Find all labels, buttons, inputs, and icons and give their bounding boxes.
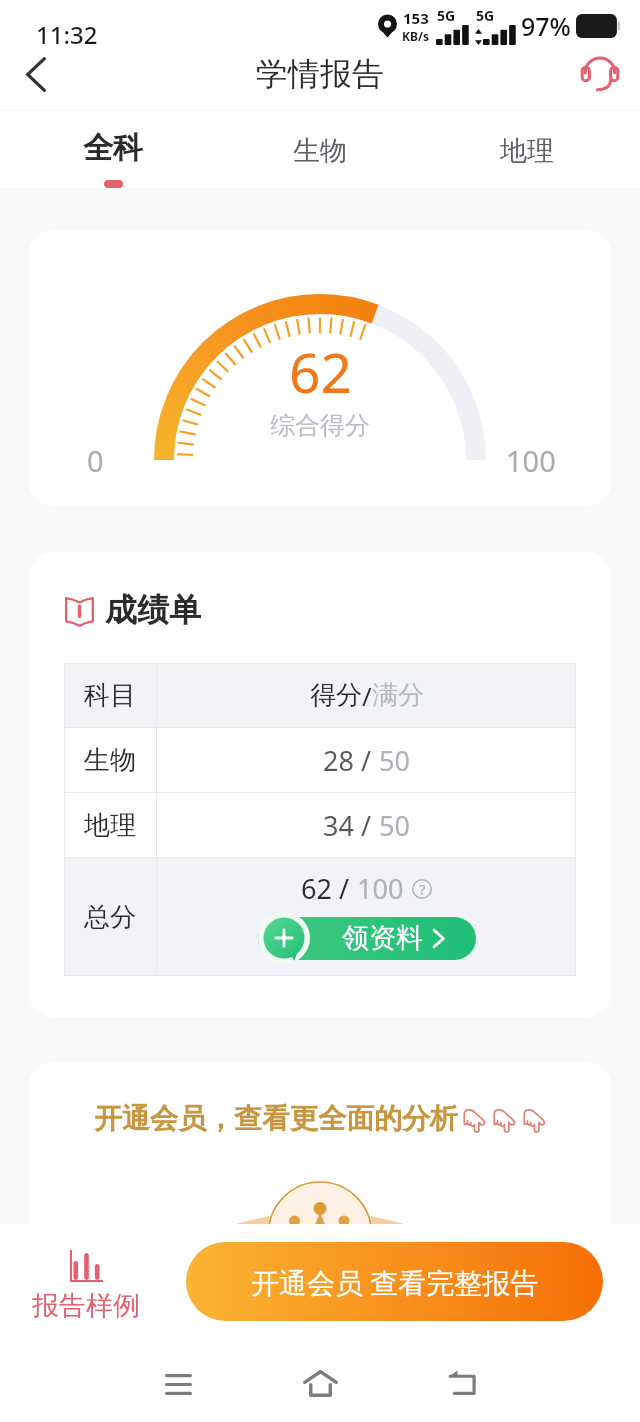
staticText: 100 [506, 441, 556, 480]
staticText: 100 [357, 870, 404, 907]
staticText: 11:32 [36, 18, 98, 51]
button[interactable]: Recents [150, 1356, 206, 1412]
button[interactable]: 生物 [220, 111, 420, 188]
staticText: 全科 [83, 129, 143, 167]
staticText: / [354, 807, 379, 844]
staticText: 地理 [84, 809, 136, 842]
staticText: 5G [437, 6, 456, 25]
staticText: 50 [379, 807, 410, 844]
button[interactable]: Home [292, 1355, 348, 1411]
button[interactable]: Customer service [571, 44, 629, 102]
button[interactable]: 全科 [13, 111, 213, 188]
staticText: 0 [87, 441, 104, 480]
staticText: 总分 [84, 901, 136, 934]
button[interactable]: 报告样例 [26, 1244, 146, 1320]
staticText: 科目 [84, 679, 136, 712]
staticText: 62 [289, 334, 352, 409]
staticText: 5G [476, 6, 495, 25]
staticText: / [332, 870, 357, 907]
staticText: 地理 [500, 134, 554, 168]
staticText: 成绩单 [105, 590, 201, 630]
staticText: 满分 [372, 679, 424, 712]
staticText: / [354, 742, 379, 779]
button[interactable]: Back [434, 1354, 490, 1410]
staticText: 开通会员，查看更全面的分析 [94, 1101, 458, 1136]
button[interactable]: 开通会员 查看完整报告 [186, 1242, 603, 1321]
staticText: 62 [301, 870, 332, 907]
staticText: ? [419, 879, 426, 899]
button[interactable]: Back [8, 46, 64, 102]
staticText: 34 [323, 807, 354, 844]
staticText: 得分 [310, 679, 362, 712]
staticText: 报告样例 [32, 1289, 140, 1323]
staticText: 综合得分 [270, 410, 370, 441]
staticText: 97% [521, 9, 571, 43]
staticText: 153 [403, 8, 429, 28]
staticText: 生物 [293, 134, 347, 168]
staticText: 开通会员 查看完整报告 [251, 1263, 539, 1301]
staticText: 50 [379, 742, 410, 779]
staticText: 学情报告 [256, 54, 384, 94]
staticText: / [362, 678, 372, 713]
button[interactable]: 地理 [427, 111, 627, 188]
staticText: 28 [323, 742, 354, 779]
button[interactable]: 领资料 [258, 912, 476, 964]
staticText: 生物 [84, 744, 136, 777]
staticText: 领资料 [342, 921, 423, 955]
staticText: KB/s [402, 28, 429, 44]
